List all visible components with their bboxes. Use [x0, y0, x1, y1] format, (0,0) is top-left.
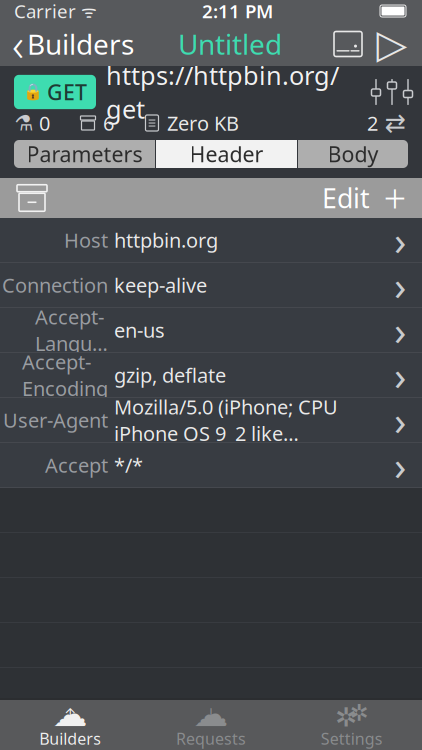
button[interactable]: Options	[370, 76, 414, 108]
staticText: ↓	[201, 704, 220, 730]
staticText: ›	[394, 213, 406, 266]
staticText: Host	[64, 227, 108, 253]
staticText: ›	[394, 393, 406, 446]
button[interactable]: Accept-Langu…	[0, 308, 422, 353]
button[interactable]: ☁	[0, 700, 141, 750]
staticText: ›	[394, 303, 406, 356]
staticText: https://httpbin.org/get	[106, 58, 339, 126]
staticText: 🔒	[23, 83, 43, 101]
staticText: Connection	[2, 272, 108, 298]
button[interactable]: Parameters	[14, 140, 155, 168]
staticText: Accept	[45, 452, 108, 478]
button[interactable]: Accept-Encoding	[0, 353, 422, 398]
staticText: keep-alive	[114, 272, 207, 298]
staticText: Accept-Encoding	[22, 348, 108, 401]
staticText: ᯤ	[76, 0, 97, 22]
staticText: en-us	[114, 317, 165, 343]
button[interactable]: Host	[0, 218, 422, 263]
staticText: ›	[394, 258, 406, 311]
staticText: ›	[394, 438, 406, 491]
button[interactable]: ✲	[281, 700, 422, 750]
button[interactable]: 🔒	[14, 75, 96, 109]
button[interactable]: User-Agent	[0, 398, 422, 443]
staticText: 0	[39, 110, 50, 136]
button[interactable]: Accept	[0, 443, 422, 488]
button[interactable]: Image	[326, 22, 370, 66]
staticText: Parameters	[26, 140, 142, 168]
button[interactable]: ☁	[141, 700, 281, 750]
staticText: ⚗	[14, 111, 33, 135]
staticText: Builders	[39, 728, 101, 749]
staticText: Settings	[321, 728, 383, 749]
staticText: User-Agent	[3, 407, 108, 433]
staticText: Builders	[27, 25, 134, 63]
staticText: +	[383, 171, 406, 224]
staticText: Untitled	[178, 25, 282, 63]
button[interactable]: Edit	[316, 178, 376, 218]
staticText: ✲	[335, 702, 357, 732]
staticText: Carrier	[14, 0, 76, 23]
staticText: Mozilla/5.0 (iPhone; CPU iPhone OS 9_2 l…	[114, 393, 338, 446]
staticText: Header	[189, 140, 263, 168]
button[interactable]: Connection	[0, 263, 422, 308]
staticText: gzip, deflate	[114, 362, 226, 388]
staticText: httpbin.org	[114, 227, 218, 253]
staticText: */*	[114, 452, 143, 478]
staticText: ↑	[61, 704, 80, 730]
button[interactable]: ‹	[0, 22, 134, 66]
staticText: Zero KB	[167, 110, 239, 136]
staticText: ›	[394, 348, 406, 401]
button[interactable]: Run	[370, 22, 414, 66]
staticText: Accept-Langu…	[35, 303, 108, 356]
button[interactable]: Body	[298, 140, 408, 168]
staticText: Body	[327, 140, 378, 168]
staticText: ‹	[12, 14, 24, 74]
staticText: ⇄	[384, 109, 405, 137]
staticText: ▷	[376, 21, 407, 67]
staticText: ☁	[193, 694, 228, 733]
staticText: ☁	[53, 694, 88, 733]
button[interactable]: Archive	[0, 178, 48, 218]
staticText: 2	[367, 110, 378, 136]
staticText: ✲	[350, 700, 369, 726]
staticText: Edit	[322, 180, 370, 216]
button[interactable]: Add	[376, 178, 414, 218]
staticText: GET	[47, 78, 87, 106]
staticText: Requests	[176, 728, 246, 749]
staticText: 2:11 PM	[202, 0, 273, 23]
staticText: 6	[103, 110, 114, 136]
button[interactable]: Header	[156, 140, 297, 168]
